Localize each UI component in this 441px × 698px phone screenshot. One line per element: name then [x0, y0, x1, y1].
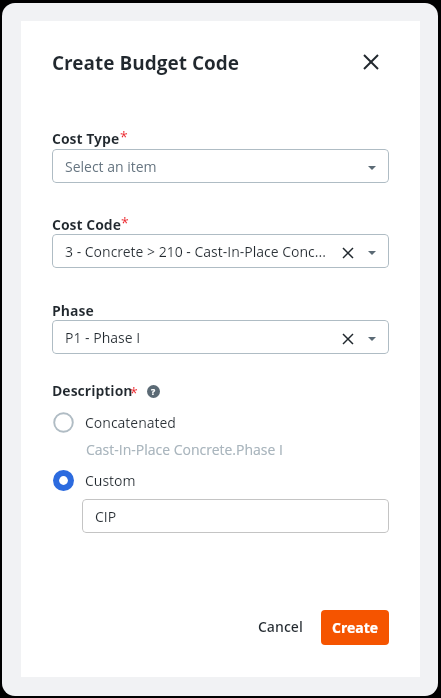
button[interactable]: Clear [338, 329, 358, 349]
staticText: Cast-In-Place Concrete.Phase I [86, 440, 283, 459]
staticText: Custom [85, 471, 136, 490]
button[interactable]: Help [145, 383, 161, 399]
button[interactable]: Custom [49, 466, 136, 494]
staticText: * [120, 127, 128, 146]
button[interactable]: P1 - Phase I [52, 320, 389, 354]
staticText: Concatenated [85, 413, 176, 432]
staticText: Create [332, 618, 379, 637]
staticText: Select an item [65, 157, 364, 176]
staticText: Cancel [258, 617, 303, 636]
button[interactable]: CIP [82, 499, 389, 533]
staticText: CIP [95, 507, 117, 526]
staticText: ? [151, 385, 156, 397]
button[interactable]: Close [353, 44, 389, 80]
staticText: Description [52, 381, 133, 400]
staticText: Cost Code [52, 215, 121, 234]
button[interactable]: Create [321, 610, 389, 645]
staticText: Create Budget Code [52, 50, 240, 76]
staticText: 3 - Concrete > 210 - Cast-In-Place Conc.… [65, 242, 340, 261]
button[interactable]: Clear [338, 243, 358, 263]
staticText: Phase [52, 301, 94, 320]
button[interactable]: Select an item [52, 149, 389, 183]
button[interactable]: Cancel [246, 608, 315, 645]
button[interactable]: Concatenated [49, 408, 176, 436]
button[interactable]: 3 - Concrete > 210 - Cast-In-Place Conc.… [52, 234, 389, 268]
staticText: * [130, 383, 138, 402]
staticText: P1 - Phase I [65, 328, 340, 347]
staticText: Cost Type [52, 129, 120, 148]
staticText: * [121, 213, 129, 232]
